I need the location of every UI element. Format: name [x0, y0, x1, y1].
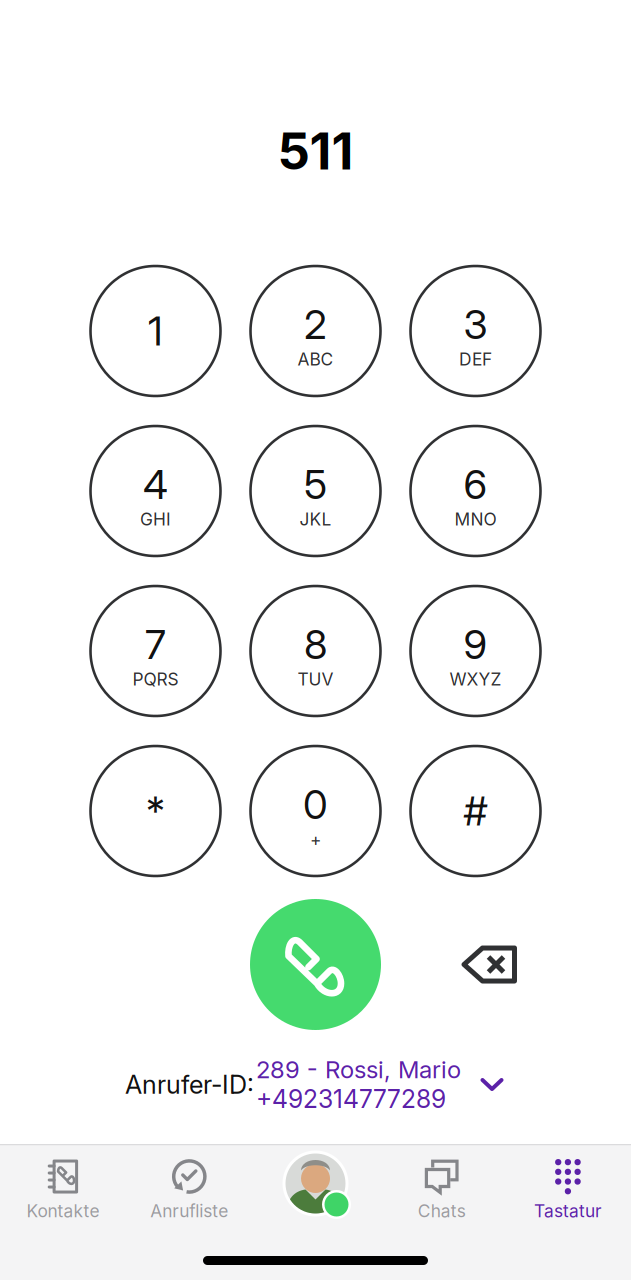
button[interactable]: * — [90, 746, 220, 876]
button[interactable]: Anrufliste — [126, 1145, 252, 1233]
staticText: 3 — [463, 300, 487, 349]
button[interactable]: Kontakte — [0, 1145, 126, 1233]
staticText: JKL — [299, 509, 331, 530]
button[interactable]: Chats — [379, 1145, 505, 1233]
staticText: 511 — [277, 120, 353, 182]
staticText: Tastatur — [534, 1200, 602, 1221]
staticText: MNO — [454, 509, 496, 530]
button[interactable]: Anrufen — [250, 899, 381, 1030]
staticText: + — [310, 829, 321, 850]
staticText: 2 — [304, 300, 327, 349]
staticText: * — [146, 787, 165, 835]
button[interactable]: 2 — [250, 266, 380, 396]
staticText: 9 — [463, 620, 487, 669]
staticText: PQRS — [132, 669, 178, 690]
button[interactable]: Löschen — [447, 922, 531, 1006]
button[interactable]: 8 — [250, 586, 380, 716]
staticText: 4 — [143, 460, 168, 509]
staticText: WXYZ — [449, 669, 501, 690]
staticText: 8 — [304, 620, 327, 669]
staticText: 1 — [148, 307, 163, 355]
button[interactable]: 1 — [90, 266, 220, 396]
button[interactable]: 6 — [410, 426, 540, 556]
staticText: DEF — [459, 349, 492, 370]
staticText: 0 — [303, 780, 328, 829]
staticText: Chats — [418, 1200, 466, 1221]
button[interactable]: # — [410, 746, 540, 876]
button[interactable] — [252, 1145, 379, 1233]
button[interactable]: 7 — [90, 586, 220, 716]
button[interactable]: 9 — [410, 586, 540, 716]
staticText: 5 — [304, 460, 327, 509]
staticText: ABC — [297, 349, 333, 370]
button[interactable]: Anrufer-ID auswählen — [475, 1069, 509, 1099]
button[interactable]: 4 — [90, 426, 220, 556]
button[interactable]: 3 — [410, 266, 540, 396]
staticText: 6 — [463, 460, 487, 509]
staticText: Anrufer-ID: — [125, 1069, 254, 1100]
staticText: Kontakte — [27, 1200, 100, 1221]
staticText: TUV — [297, 669, 333, 690]
staticText: 289 - Rossi, Mario — [256, 1055, 461, 1084]
staticText: GHI — [140, 509, 171, 530]
button[interactable]: 0 — [250, 746, 380, 876]
button[interactable]: 5 — [250, 426, 380, 556]
staticText: # — [463, 787, 487, 835]
staticText: +492314777289 — [256, 1084, 446, 1114]
button[interactable]: Tastatur — [505, 1145, 631, 1233]
staticText: Anrufliste — [150, 1200, 228, 1221]
staticText: 7 — [145, 620, 166, 669]
